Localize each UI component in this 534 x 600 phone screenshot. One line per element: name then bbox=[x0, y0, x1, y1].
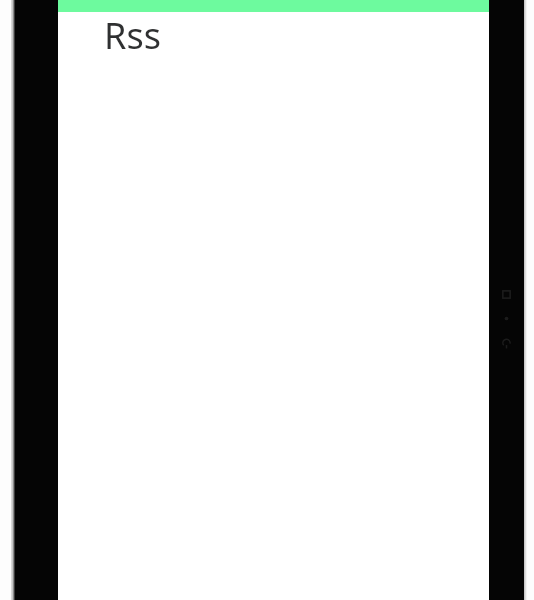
button[interactable]: Recents bbox=[500, 288, 513, 301]
button[interactable]: Home bbox=[501, 313, 512, 324]
staticText: Rss bbox=[104, 11, 161, 57]
button[interactable]: Back bbox=[500, 337, 513, 350]
button[interactable]: Rss bbox=[58, 12, 489, 58]
